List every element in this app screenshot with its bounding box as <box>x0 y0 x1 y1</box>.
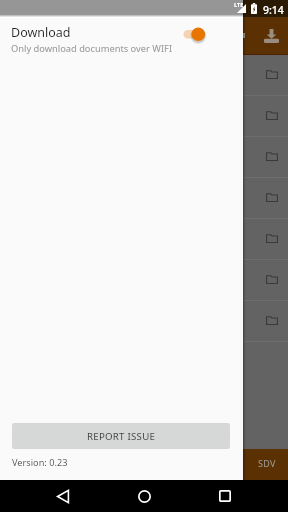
staticText: Folder <box>16 231 266 247</box>
button[interactable]: Recents <box>209 480 241 512</box>
button[interactable]: Folder <box>0 137 288 177</box>
button[interactable]: Back <box>47 480 79 512</box>
button[interactable]: Select all <box>237 33 245 38</box>
staticText: REPORT ISSUE <box>87 430 156 443</box>
staticText: Folder <box>16 108 266 124</box>
button[interactable]: Folder <box>0 301 288 341</box>
staticText: Internal storage <box>14 26 128 46</box>
button[interactable]: Download <box>0 18 243 62</box>
button[interactable]: Folder <box>0 96 288 136</box>
button[interactable]: Download <box>255 20 288 53</box>
staticText: Folder <box>16 272 266 288</box>
staticText: LTE <box>234 1 244 8</box>
staticText: Folder <box>16 149 266 165</box>
staticText: Folder <box>16 67 266 83</box>
button[interactable]: Folder <box>0 178 288 218</box>
staticText: Only download documents over WIFI <box>11 42 173 55</box>
button[interactable]: REPORT ISSUE <box>12 423 230 449</box>
staticText: Folder <box>16 190 266 206</box>
button[interactable]: Folder <box>0 55 288 95</box>
staticText: Folder <box>16 313 266 329</box>
button[interactable] <box>183 24 217 46</box>
staticText: Version: 0.23 <box>12 456 68 469</box>
button[interactable]: INTERNAL STORAGE <box>0 449 245 480</box>
button[interactable]: Folder <box>0 219 288 259</box>
staticText: Download <box>11 24 71 41</box>
button[interactable]: Folder <box>0 260 288 300</box>
button[interactable]: Home <box>128 480 160 512</box>
staticText: SDV <box>258 457 276 469</box>
button[interactable]: SDV <box>245 449 288 480</box>
staticText: 9:14 <box>263 3 284 17</box>
